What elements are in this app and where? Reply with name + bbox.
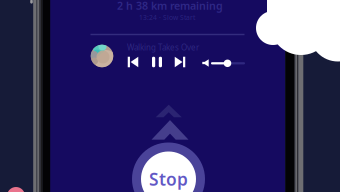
- staticText: Stop: [149, 167, 188, 190]
- staticText: 13:24 · Slow Start: [139, 13, 195, 22]
- staticText: 2 h 38 km remaining: [117, 0, 223, 13]
- staticText: Walking Takes Over: [127, 42, 199, 53]
